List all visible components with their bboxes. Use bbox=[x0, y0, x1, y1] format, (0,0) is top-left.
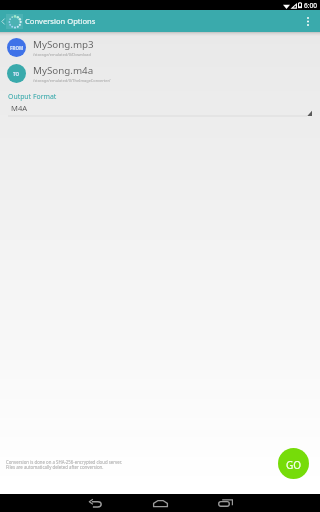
staticText: TO bbox=[13, 71, 20, 77]
staticText: Conversion is done on a SHA-256-encrypte… bbox=[6, 459, 122, 470]
staticText: Conversion Options bbox=[25, 16, 96, 26]
staticText: MySong.m4a bbox=[33, 64, 94, 77]
button[interactable]: Recents bbox=[205, 494, 245, 512]
button[interactable]: FROM bbox=[0, 34, 320, 60]
button[interactable]: More options bbox=[296, 10, 320, 32]
staticText: FROM bbox=[10, 45, 24, 51]
staticText: Output Format bbox=[8, 92, 57, 101]
staticText: /storage/emulated/0/Download bbox=[33, 52, 91, 57]
staticText: 6:00 bbox=[304, 1, 317, 10]
button[interactable]: TO bbox=[0, 60, 320, 86]
staticText: /storage/emulated/0/TheImageConverter/ bbox=[33, 78, 111, 83]
staticText: MySong.mp3 bbox=[33, 38, 94, 51]
button[interactable]: M4A bbox=[0, 101, 320, 118]
button[interactable]: GO bbox=[278, 448, 309, 479]
button[interactable]: Home bbox=[140, 494, 180, 512]
staticText: M4A bbox=[11, 103, 28, 113]
button[interactable]: Back bbox=[75, 494, 115, 512]
button[interactable]: Back bbox=[0, 10, 6, 32]
staticText: GO bbox=[286, 458, 302, 472]
